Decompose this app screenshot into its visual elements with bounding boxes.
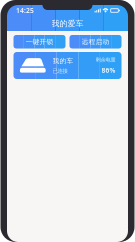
staticText: 剩余电量 xyxy=(95,56,115,63)
button[interactable]: 一键开锁 xyxy=(13,35,65,48)
staticText: 我的爱车 xyxy=(51,19,83,28)
button[interactable]: 远程启动 xyxy=(69,35,121,48)
staticText: 远程启动 xyxy=(81,38,109,46)
button[interactable]: 我的车 xyxy=(13,52,121,79)
staticText: 已连接 xyxy=(52,68,67,74)
staticText: 我的车 xyxy=(52,57,73,65)
staticText: 86% xyxy=(101,66,115,74)
staticText: 14:25 xyxy=(16,6,34,15)
staticText: 一键开锁 xyxy=(25,38,53,46)
